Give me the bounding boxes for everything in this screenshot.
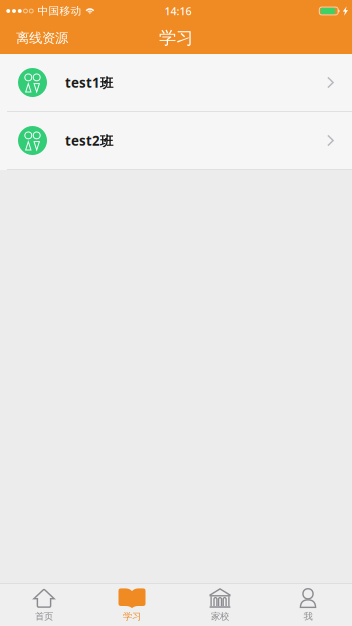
- staticText: 学习: [123, 611, 141, 622]
- button[interactable]: 我: [264, 584, 352, 626]
- staticText: 首页: [35, 611, 53, 622]
- staticText: 离线资源: [16, 30, 68, 46]
- staticText: 中国移动: [37, 4, 81, 17]
- button[interactable]: 离线资源: [0, 23, 78, 53]
- button[interactable]: 学习: [88, 584, 176, 626]
- staticText: test1班: [65, 74, 113, 91]
- button[interactable]: 家校: [176, 584, 264, 626]
- button[interactable]: test2班: [0, 112, 352, 170]
- staticText: 学习: [159, 27, 193, 49]
- button[interactable]: 首页: [0, 584, 88, 626]
- staticText: test2班: [65, 132, 113, 149]
- staticText: 我: [303, 611, 312, 622]
- button[interactable]: test1班: [0, 54, 352, 112]
- staticText: 14:16: [164, 4, 191, 18]
- staticText: 家校: [211, 611, 229, 622]
